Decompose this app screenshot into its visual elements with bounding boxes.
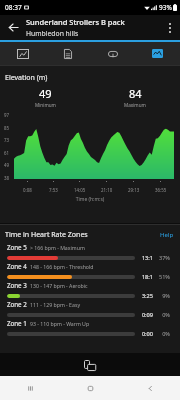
staticText: Sunderland Strollers B pack [26,17,125,27]
button[interactable]: Home [60,376,120,400]
staticText: > 166 bpm - Maximum [30,244,85,251]
staticText: 49 [4,162,10,168]
staticText: 0% [158,330,170,338]
staticText: 29:13 [128,187,140,193]
button[interactable]: More options [160,15,180,40]
staticText: 0% [158,311,170,319]
button[interactable]: Recent apps [0,376,60,400]
staticText: 93 - 110 bpm - Warm Up [30,320,90,327]
staticText: Zone 2 [7,300,27,308]
staticText: Time in Heart Rate Zones [5,230,157,240]
staticText: 9% [158,292,170,300]
staticText: Maximum [124,102,146,108]
button[interactable]: Compare activities [80,355,100,375]
staticText: Humbledon hills [26,29,79,38]
button[interactable]: Charts [135,42,180,65]
staticText: 84 [129,86,142,101]
staticText: 36:55 [155,187,167,193]
button[interactable]: Help [157,229,177,241]
staticText: 0:08 [23,187,32,193]
staticText: Zone 4 [7,262,27,270]
staticText: 93% [159,3,172,12]
staticText: 49 [39,86,52,101]
button[interactable]: Map [0,42,45,65]
staticText: 38 [4,175,10,181]
staticText: 0:00 [139,330,153,338]
staticText: 130 - 147 bpm - Aerobic [30,282,88,289]
staticText: 97 [4,112,10,118]
staticText: Minimum [35,102,56,108]
button[interactable]: Laps [90,42,135,65]
button[interactable]: Details [45,42,90,65]
staticText: Elevation (m) [5,73,48,83]
staticText: 14:05 [74,187,86,193]
staticText: 08:37 [5,3,22,12]
staticText: 85 [4,125,10,131]
staticText: 13:17 [139,254,153,262]
staticText: 3:25 [139,292,153,300]
button[interactable]: Back [120,376,180,400]
staticText: Zone 3 [7,281,27,289]
staticText: 148 - 166 bpm - Threshold [30,263,94,270]
staticText: 73 [4,137,10,143]
staticText: 111 - 129 bpm - Easy [30,301,81,308]
staticText: 7:53 [49,187,58,193]
staticText: 37% [158,254,170,262]
button[interactable]: Navigate up [0,15,26,40]
staticText: Help [160,231,174,239]
staticText: 51% [158,273,170,281]
staticText: Zone 5 [7,243,27,251]
staticText: 61 [4,150,10,156]
staticText: 0:09 [139,311,153,319]
staticText: 21:10 [101,187,113,193]
staticText: Zone 1 [7,319,27,327]
staticText: 18:17 [139,273,153,281]
staticText: Time (h:m:s) [0,196,180,203]
